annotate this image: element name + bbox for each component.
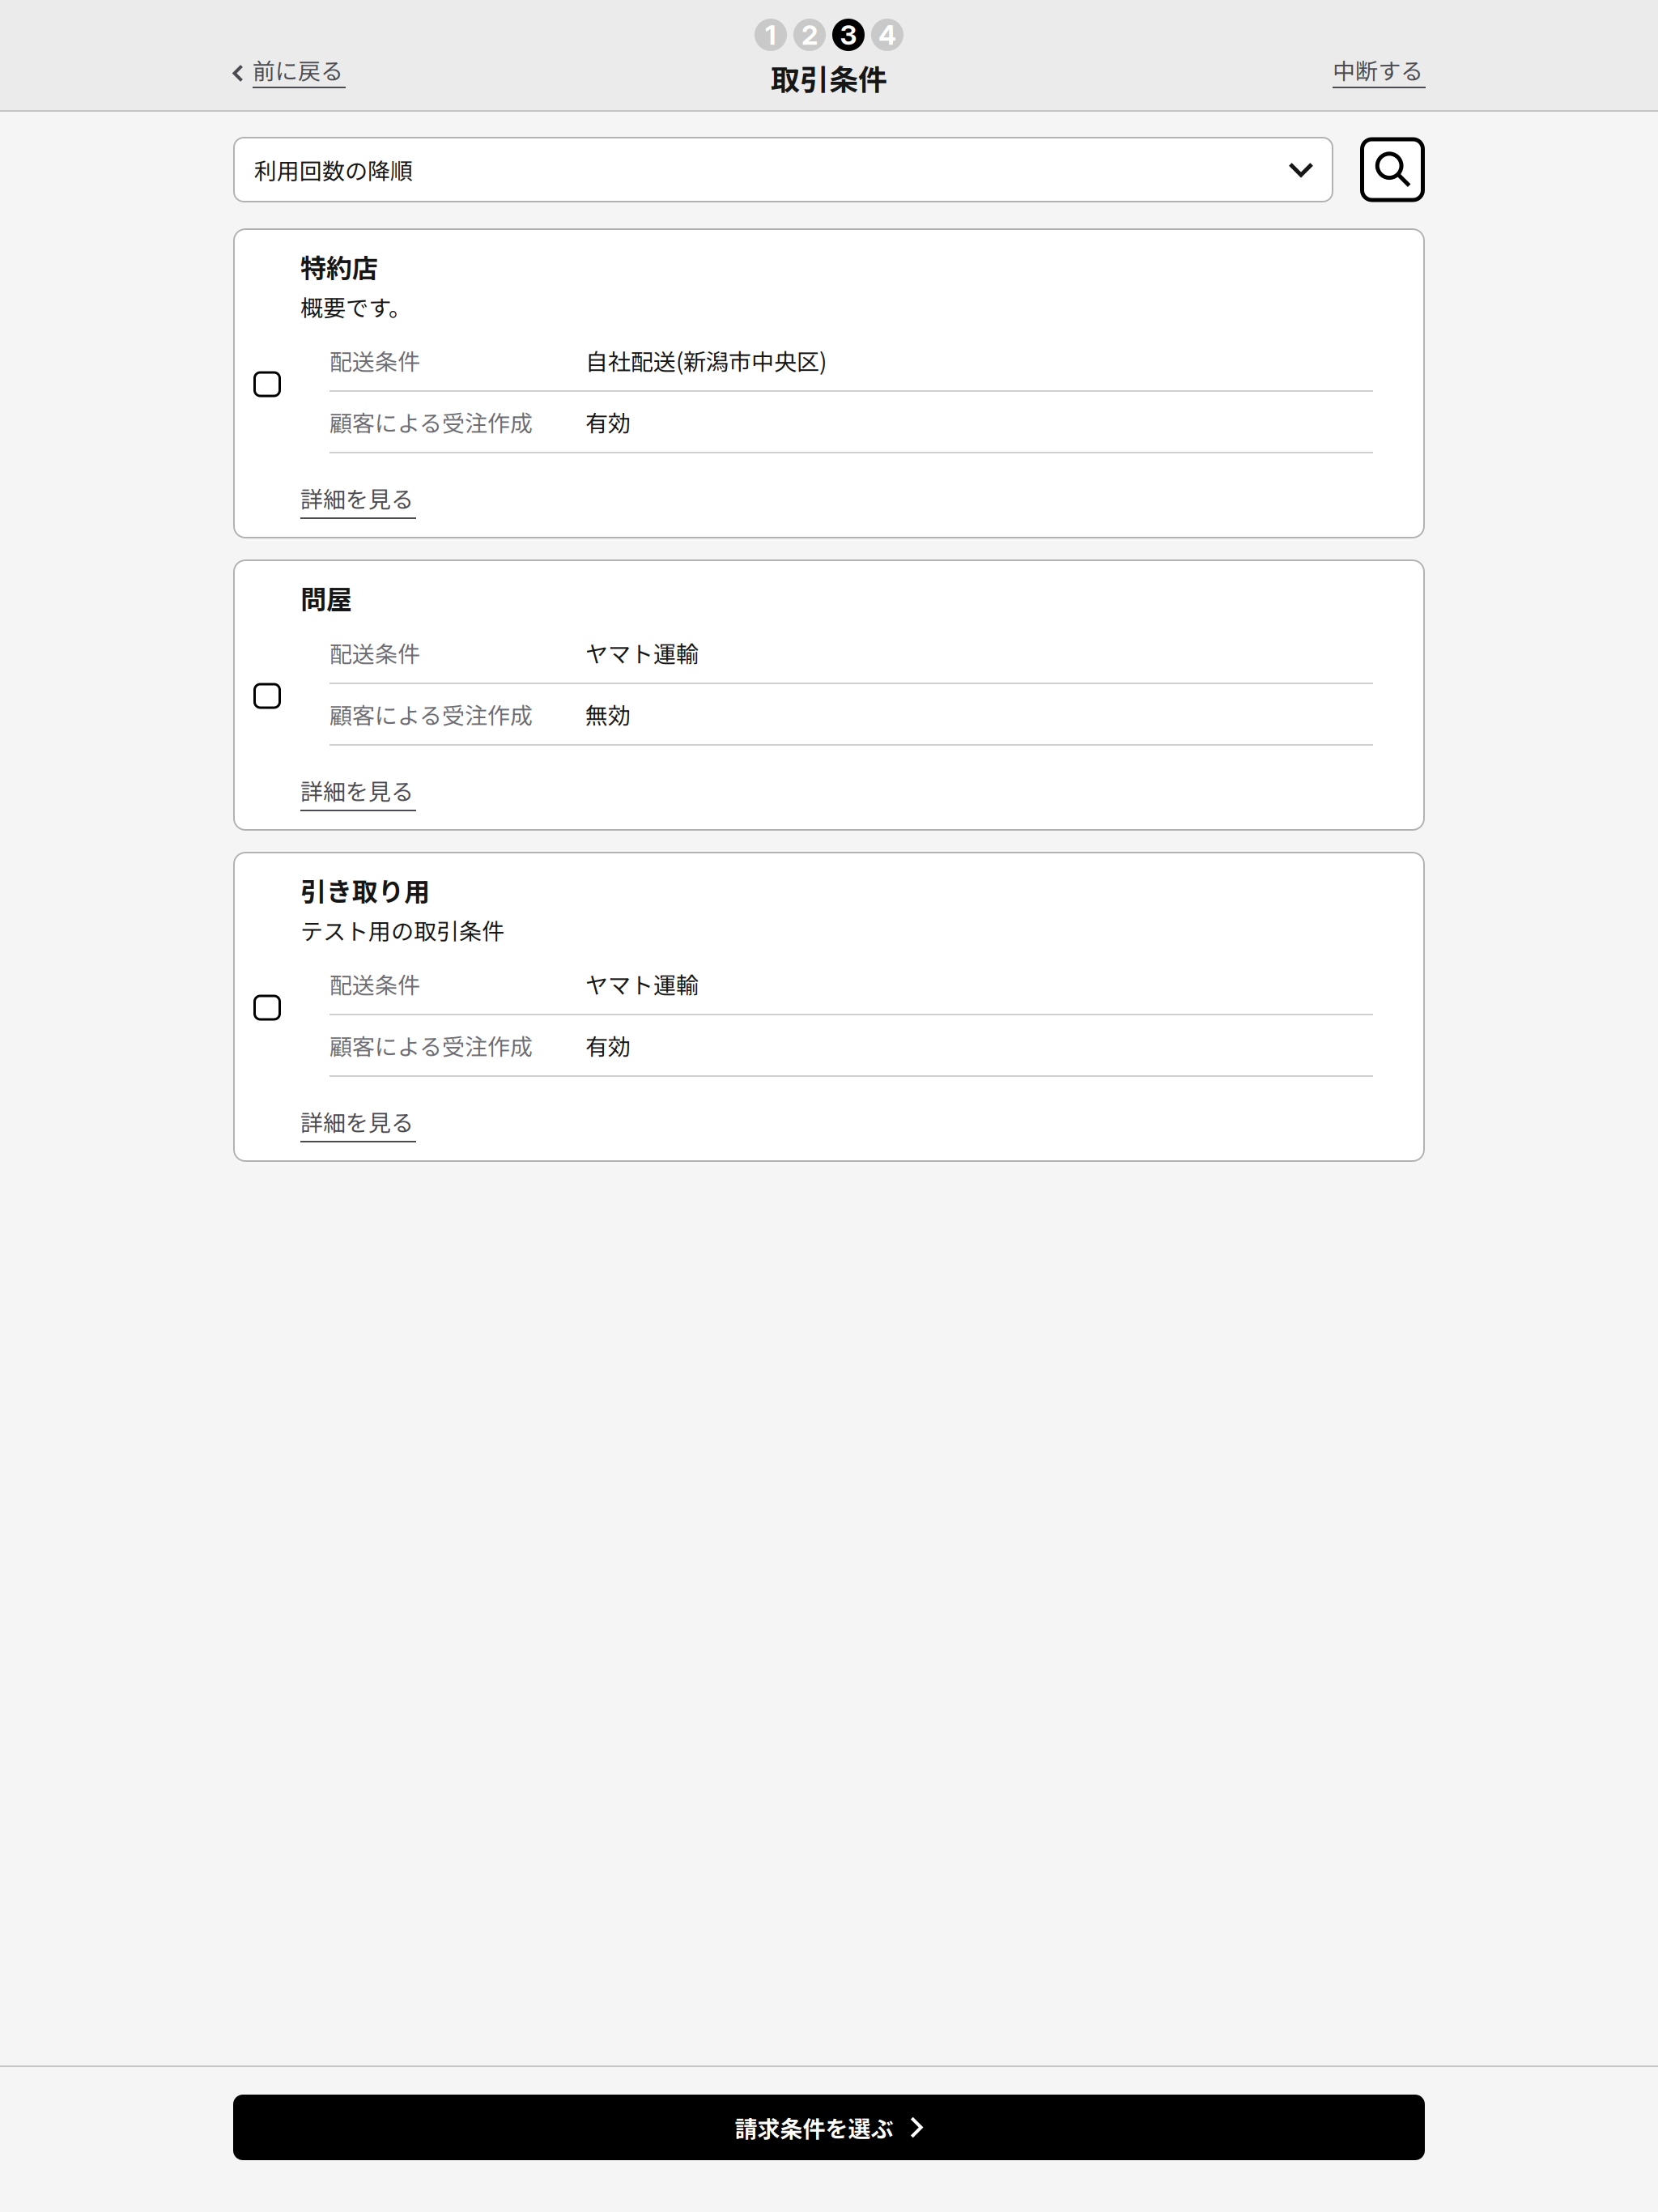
- staticText: 3: [840, 18, 857, 51]
- staticText: 詳細を見る: [300, 774, 414, 807]
- staticText: テスト用の取引条件: [300, 913, 504, 946]
- button[interactable]: 請求条件を選ぶ: [233, 2095, 1425, 2160]
- staticText: 概要です。: [300, 290, 411, 323]
- staticText: 配送条件: [329, 967, 420, 1000]
- staticText: 配送条件: [329, 344, 420, 377]
- staticText: 顧客による受注作成: [329, 1029, 533, 1062]
- staticText: 前に戻る: [253, 53, 343, 86]
- staticText: 4: [878, 18, 896, 51]
- button[interactable]: 利用回数の降順: [233, 137, 1333, 202]
- button[interactable]: 詳細を見る: [300, 746, 416, 811]
- staticText: ヤマト運輸: [585, 636, 699, 669]
- staticText: 詳細を見る: [300, 482, 414, 514]
- staticText: 特約店: [300, 248, 378, 285]
- button[interactable]: 引き取り用 を選択: [233, 978, 300, 1037]
- staticText: 配送条件: [329, 636, 420, 669]
- button[interactable]: 検索: [1360, 137, 1425, 202]
- staticText: 有効: [585, 1029, 631, 1062]
- staticText: 取引条件: [771, 57, 887, 99]
- staticText: 1: [765, 18, 776, 51]
- button[interactable]: 前に戻る: [224, 50, 357, 96]
- button[interactable]: 詳細を見る: [300, 1077, 416, 1142]
- staticText: 有効: [585, 405, 631, 438]
- staticText: 引き取り用: [300, 871, 430, 909]
- staticText: 利用回数の降順: [254, 153, 413, 186]
- staticText: ヤマト運輸: [585, 967, 699, 1000]
- staticText: 中断する: [1333, 53, 1423, 86]
- staticText: 顧客による受注作成: [329, 405, 533, 438]
- staticText: 問屋: [300, 579, 352, 616]
- staticText: 詳細を見る: [300, 1105, 414, 1138]
- button[interactable]: 特約店 を選択: [233, 355, 300, 413]
- staticText: 請求条件を選ぶ: [735, 2111, 893, 2144]
- button[interactable]: 問屋 を選択: [233, 667, 300, 725]
- staticText: 自社配送(新潟市中央区): [585, 344, 827, 377]
- button[interactable]: 詳細を見る: [300, 453, 416, 519]
- button[interactable]: 中断する: [1321, 50, 1434, 96]
- staticText: 無効: [585, 698, 631, 730]
- staticText: 顧客による受注作成: [329, 698, 533, 730]
- staticText: 2: [801, 18, 818, 51]
